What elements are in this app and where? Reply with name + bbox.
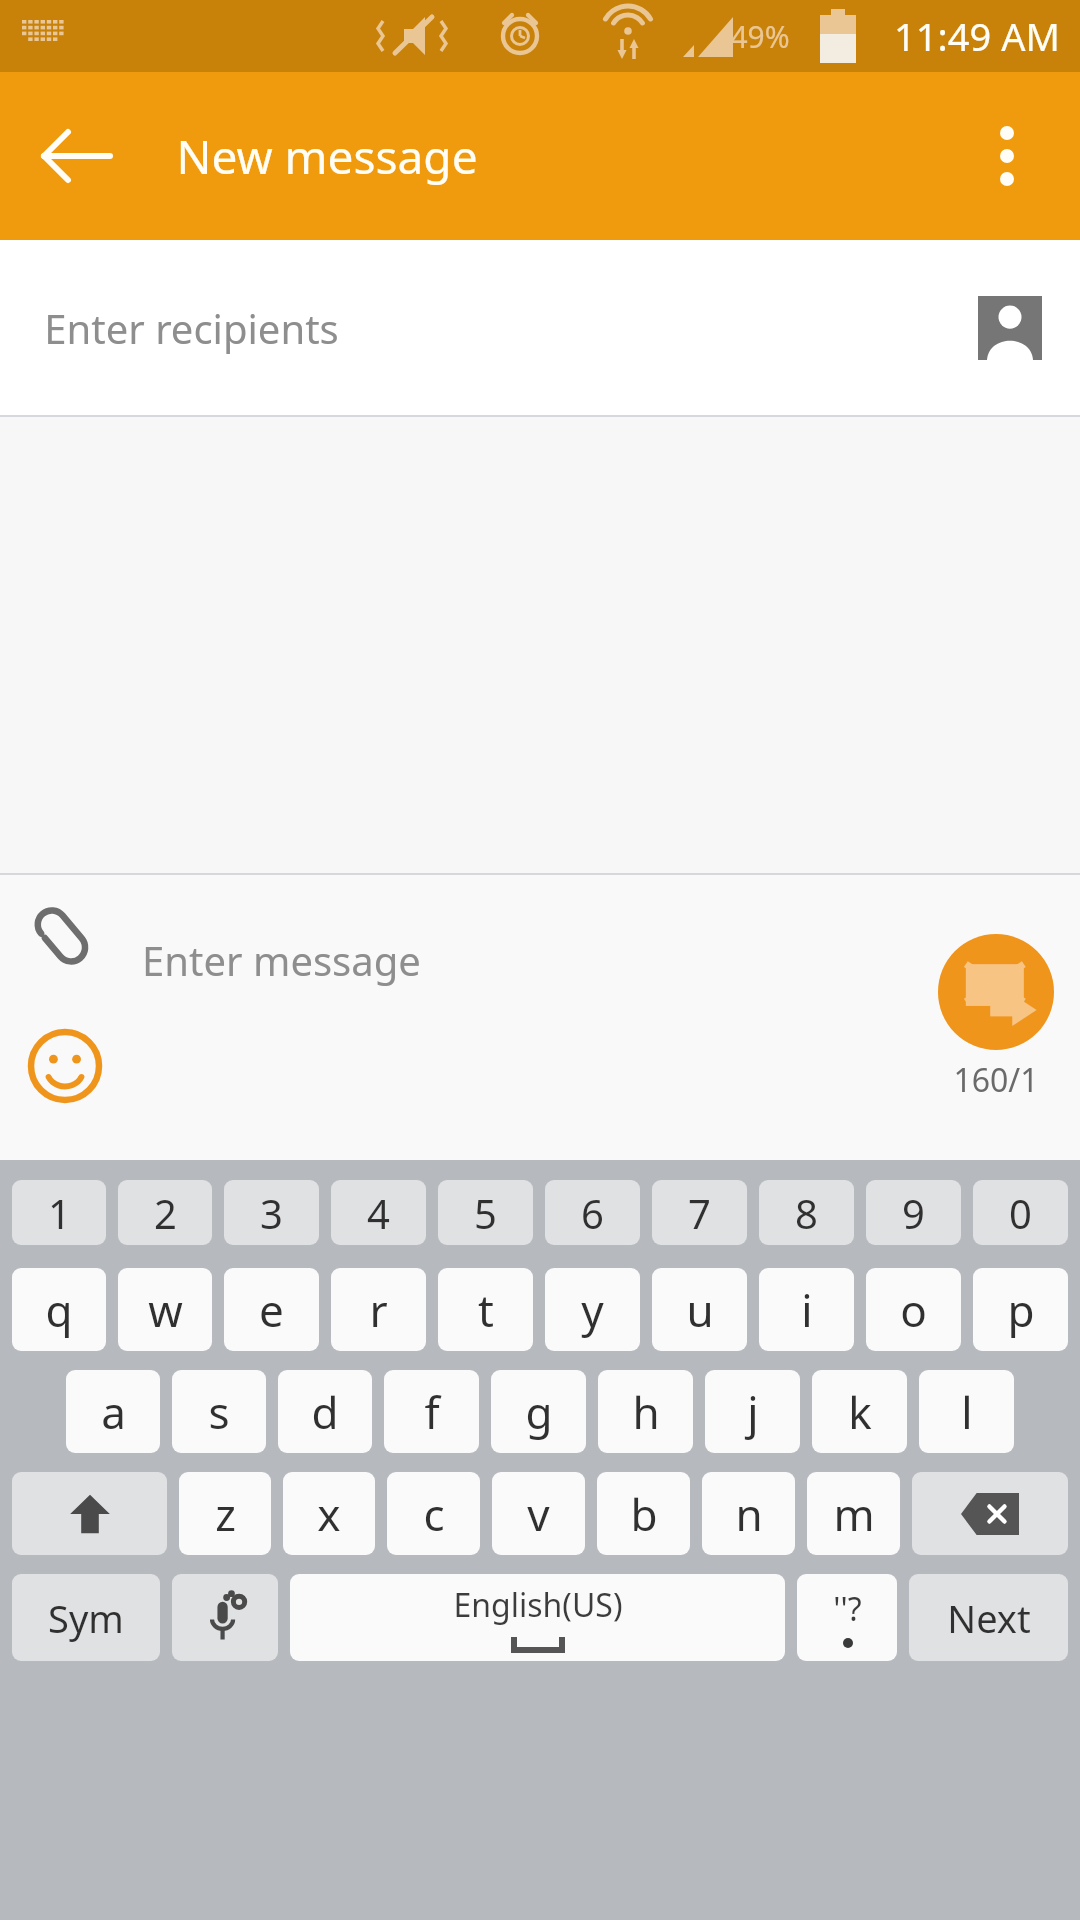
staticText: k [848, 1382, 872, 1442]
button[interactable]: j [705, 1370, 800, 1453]
button[interactable]: More options [962, 111, 1052, 201]
button[interactable]: 5 [438, 1180, 533, 1245]
staticText: 1 [48, 1186, 71, 1240]
button[interactable]: Sym [12, 1574, 160, 1661]
button[interactable]: c [387, 1472, 480, 1555]
button[interactable]: i [759, 1268, 854, 1351]
staticText: 7 [688, 1186, 711, 1240]
staticText: x [317, 1484, 341, 1544]
button[interactable]: a [66, 1370, 160, 1453]
staticText: j [747, 1382, 759, 1442]
staticText: 11:49 AM [894, 10, 1060, 62]
staticText: b [630, 1484, 658, 1544]
staticText: l [961, 1382, 973, 1442]
button[interactable]: v [492, 1472, 585, 1555]
staticText: 160/1 [953, 1058, 1039, 1102]
staticText: Sym [48, 1592, 124, 1644]
staticText: 49% [730, 16, 790, 57]
button[interactable]: 9 [866, 1180, 961, 1245]
button[interactable]: f [384, 1370, 479, 1453]
button[interactable]: y [545, 1268, 640, 1351]
staticText: z [215, 1484, 236, 1544]
staticText: Next [947, 1592, 1031, 1644]
button[interactable]: e [224, 1268, 319, 1351]
staticText: y [581, 1280, 604, 1340]
staticText: 5 [474, 1186, 497, 1240]
button[interactable]: p [973, 1268, 1068, 1351]
staticText: n [735, 1484, 763, 1544]
staticText: 0 [1009, 1186, 1032, 1240]
button[interactable]: Insert emoticon [26, 1027, 104, 1105]
button[interactable]: 7 [652, 1180, 747, 1245]
staticText: Enter recipients [44, 301, 339, 355]
button[interactable]: z [179, 1472, 271, 1555]
button[interactable]: 2 [118, 1180, 212, 1245]
staticText: 6 [581, 1186, 604, 1240]
button[interactable]: k [812, 1370, 907, 1453]
button[interactable]: Voice input [172, 1574, 278, 1661]
staticText: 4 [367, 1186, 390, 1240]
staticText: f [424, 1382, 440, 1442]
staticText: g [525, 1382, 553, 1442]
staticText: New message [176, 125, 478, 188]
button[interactable]: Period [797, 1574, 897, 1661]
button[interactable]: w [118, 1268, 212, 1351]
button[interactable]: 3 [224, 1180, 319, 1245]
staticText: e [259, 1280, 284, 1340]
staticText: s [208, 1382, 230, 1442]
staticText: w [148, 1280, 183, 1340]
staticText: d [311, 1382, 339, 1442]
button[interactable]: x [283, 1472, 375, 1555]
staticText: 3 [260, 1186, 283, 1240]
button[interactable]: m [807, 1472, 900, 1555]
staticText: 9 [902, 1186, 925, 1240]
button[interactable]: Choose contact [978, 296, 1042, 360]
staticText: a [101, 1382, 126, 1442]
staticText: 2 [154, 1186, 177, 1240]
button[interactable]: Space [290, 1574, 785, 1661]
button[interactable]: 6 [545, 1180, 640, 1245]
staticText: m [833, 1484, 875, 1544]
staticText: p [1007, 1280, 1035, 1340]
button[interactable]: 4 [331, 1180, 426, 1245]
staticText: o [900, 1280, 927, 1340]
button[interactable]: Backspace [912, 1472, 1068, 1555]
button[interactable]: Attach file [16, 891, 112, 987]
button[interactable]: s [172, 1370, 266, 1453]
button[interactable]: 8 [759, 1180, 854, 1245]
button[interactable]: Shift [12, 1472, 167, 1555]
staticText: u [686, 1280, 714, 1340]
staticText: 8 [795, 1186, 818, 1240]
button[interactable]: u [652, 1268, 747, 1351]
button[interactable]: Enter recipients [0, 240, 1080, 415]
button[interactable]: g [491, 1370, 586, 1453]
staticText: c [423, 1484, 445, 1544]
button[interactable]: h [598, 1370, 693, 1453]
button[interactable]: r [331, 1268, 426, 1351]
staticText: h [632, 1382, 660, 1442]
button[interactable]: Next [909, 1574, 1068, 1661]
button[interactable]: l [919, 1370, 1014, 1453]
button[interactable]: Send [938, 934, 1054, 1050]
button[interactable]: Back [34, 114, 118, 198]
staticText: English(US) [453, 1583, 623, 1627]
staticText: Enter message [142, 933, 421, 987]
staticText: t [478, 1280, 494, 1340]
button[interactable]: d [278, 1370, 372, 1453]
button[interactable]: o [866, 1268, 961, 1351]
staticText: v [527, 1484, 550, 1544]
button[interactable]: t [438, 1268, 533, 1351]
button[interactable]: q [12, 1268, 106, 1351]
staticText: i [801, 1280, 813, 1340]
staticText: ''? [833, 1587, 862, 1631]
staticText: q [45, 1280, 73, 1340]
button[interactable]: b [597, 1472, 690, 1555]
button[interactable]: n [702, 1472, 795, 1555]
button[interactable]: 0 [973, 1180, 1068, 1245]
button[interactable]: 1 [12, 1180, 106, 1245]
staticText: r [369, 1280, 388, 1340]
